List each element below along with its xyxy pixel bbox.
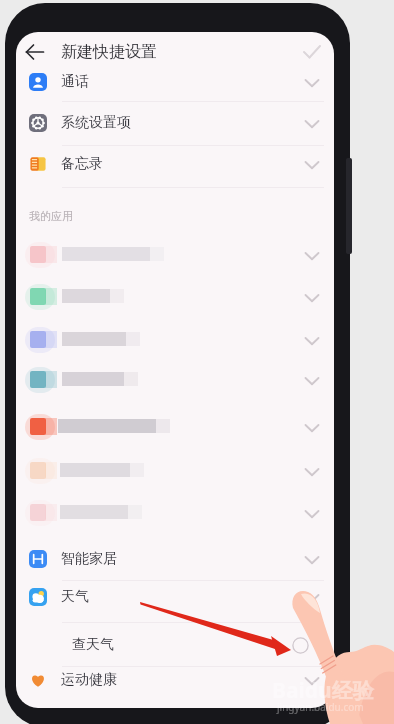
button[interactable]: 备忘录 [16,143,334,185]
button[interactable]: 运动健康 [16,659,334,701]
button[interactable]: 通话 [16,61,334,103]
staticText: 智能家居 [61,550,117,568]
staticText: 我的应用 [29,209,73,223]
staticText: 运动健康 [61,671,117,689]
button[interactable] [16,406,334,448]
button[interactable]: Back [22,39,48,65]
staticText: 天气 [61,588,89,606]
button[interactable] [16,234,334,276]
button[interactable]: 智能家居 [16,538,334,580]
staticText: 备忘录 [61,155,103,173]
button[interactable] [16,450,334,492]
staticText: 查天气 [72,636,114,654]
staticText: 通话 [61,73,89,91]
button[interactable]: Add shortcut [292,637,309,654]
staticText: Baidu经验 [272,676,374,705]
button[interactable]: 天气 [16,576,334,618]
staticText: jingyan.baidu.com [277,700,364,714]
button[interactable] [16,276,334,318]
staticText: 新建快捷设置 [61,42,157,62]
staticText: 系统设置项 [61,114,131,132]
button[interactable] [16,319,334,361]
button[interactable] [16,492,334,534]
button[interactable]: 系统设置项 [16,102,334,144]
button[interactable] [16,359,334,401]
button[interactable]: 查天气 [16,624,334,666]
button[interactable]: Confirm [299,39,325,65]
